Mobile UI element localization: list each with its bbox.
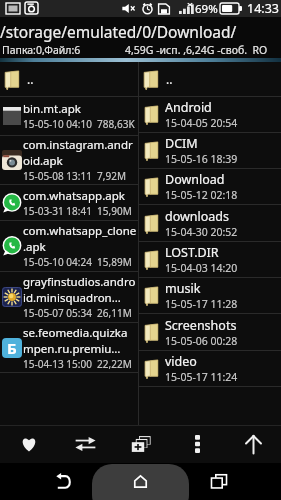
button[interactable]: Download (139, 169, 281, 205)
staticText: Android (165, 99, 212, 116)
staticText: com.whatsapp.apk (23, 188, 125, 204)
staticText: 15-05-07 05:34 26,11M (23, 306, 132, 320)
button[interactable]: downloads (139, 205, 281, 242)
button[interactable]: Transfer (57, 425, 113, 463)
staticText: 69% (195, 1, 218, 17)
staticText: com.whatsapp_clone.apk (23, 223, 138, 255)
staticText: 15-05-08 13:11 7,92M (23, 169, 127, 183)
staticText: .. (27, 71, 34, 87)
staticText: LOST.DIR (165, 244, 219, 261)
staticText: .. (166, 71, 173, 87)
button[interactable]: Android (139, 97, 281, 133)
staticText: 15-05-10 04:24 15,89M (23, 255, 132, 269)
staticText: 15-05-17 11:28 (165, 297, 238, 311)
button[interactable]: .. (0, 62, 138, 97)
button[interactable]: Favorites (0, 425, 57, 463)
staticText: se.feomedia.quizkampen.ru.premiu… (23, 325, 138, 357)
staticText: 14:33 (247, 0, 279, 17)
staticText: 15-05-06 00:28 (165, 334, 238, 348)
staticText: 15-05-10 04:10 788,63K (23, 117, 135, 131)
button[interactable]: Up (225, 425, 281, 463)
button[interactable]: Home (92, 463, 189, 500)
button[interactable]: Screenshots (139, 314, 281, 351)
button[interactable]: com.instagram.android.apk (0, 136, 138, 185)
staticText: com.instagram.android.apk (23, 137, 138, 169)
staticText: DCIM (165, 135, 198, 152)
button[interactable]: video (139, 351, 281, 387)
button[interactable]: Back (44, 463, 82, 500)
staticText: 15-04-03 14:20 (165, 261, 238, 275)
button[interactable]: Recent apps (200, 463, 238, 500)
staticText: Download (165, 171, 225, 188)
staticText: 15-03-31 18:41 15,90M (23, 204, 132, 218)
button[interactable]: com.whatsapp.apk (0, 185, 138, 221)
staticText: Б (7, 338, 17, 358)
staticText: grayfinstudios.android.minisquadron… (23, 274, 138, 306)
button[interactable]: DCIM (139, 133, 281, 169)
button[interactable]: com.whatsapp_clone.apk (0, 221, 138, 272)
button[interactable]: Б (0, 323, 138, 373)
staticText: musik (165, 280, 201, 297)
staticText: 15-05-16 18:39 (165, 152, 238, 166)
staticText: /storage/emulated/0/Download/ (0, 21, 237, 42)
staticText: bin.mt.apk (23, 101, 81, 117)
staticText: Папка:0,Файл:6 (2, 43, 81, 57)
staticText: 4,59G -исп. ,6,24G -своб. RO (125, 43, 268, 57)
button[interactable]: .. (139, 62, 281, 97)
button[interactable]: More options (169, 425, 225, 463)
staticText: 15-04-30 20:52 (165, 225, 238, 239)
button[interactable]: New window (113, 425, 169, 463)
button[interactable]: grayfinstudios.android.minisquadron… (0, 272, 138, 323)
staticText: 15-04-05 20:54 (165, 116, 238, 130)
button[interactable]: LOST.DIR (139, 242, 281, 278)
button[interactable]: musik (139, 278, 281, 314)
button[interactable]: bin.mt.apk (0, 97, 138, 136)
staticText: 15-05-17 11:24 (165, 370, 238, 384)
staticText: downloads (165, 208, 230, 225)
staticText: video (165, 353, 197, 370)
staticText: 15-04-13 15:00 22,22M (23, 357, 132, 371)
staticText: Screenshots (165, 317, 237, 334)
staticText: 15-05-12 02:18 (165, 188, 238, 202)
